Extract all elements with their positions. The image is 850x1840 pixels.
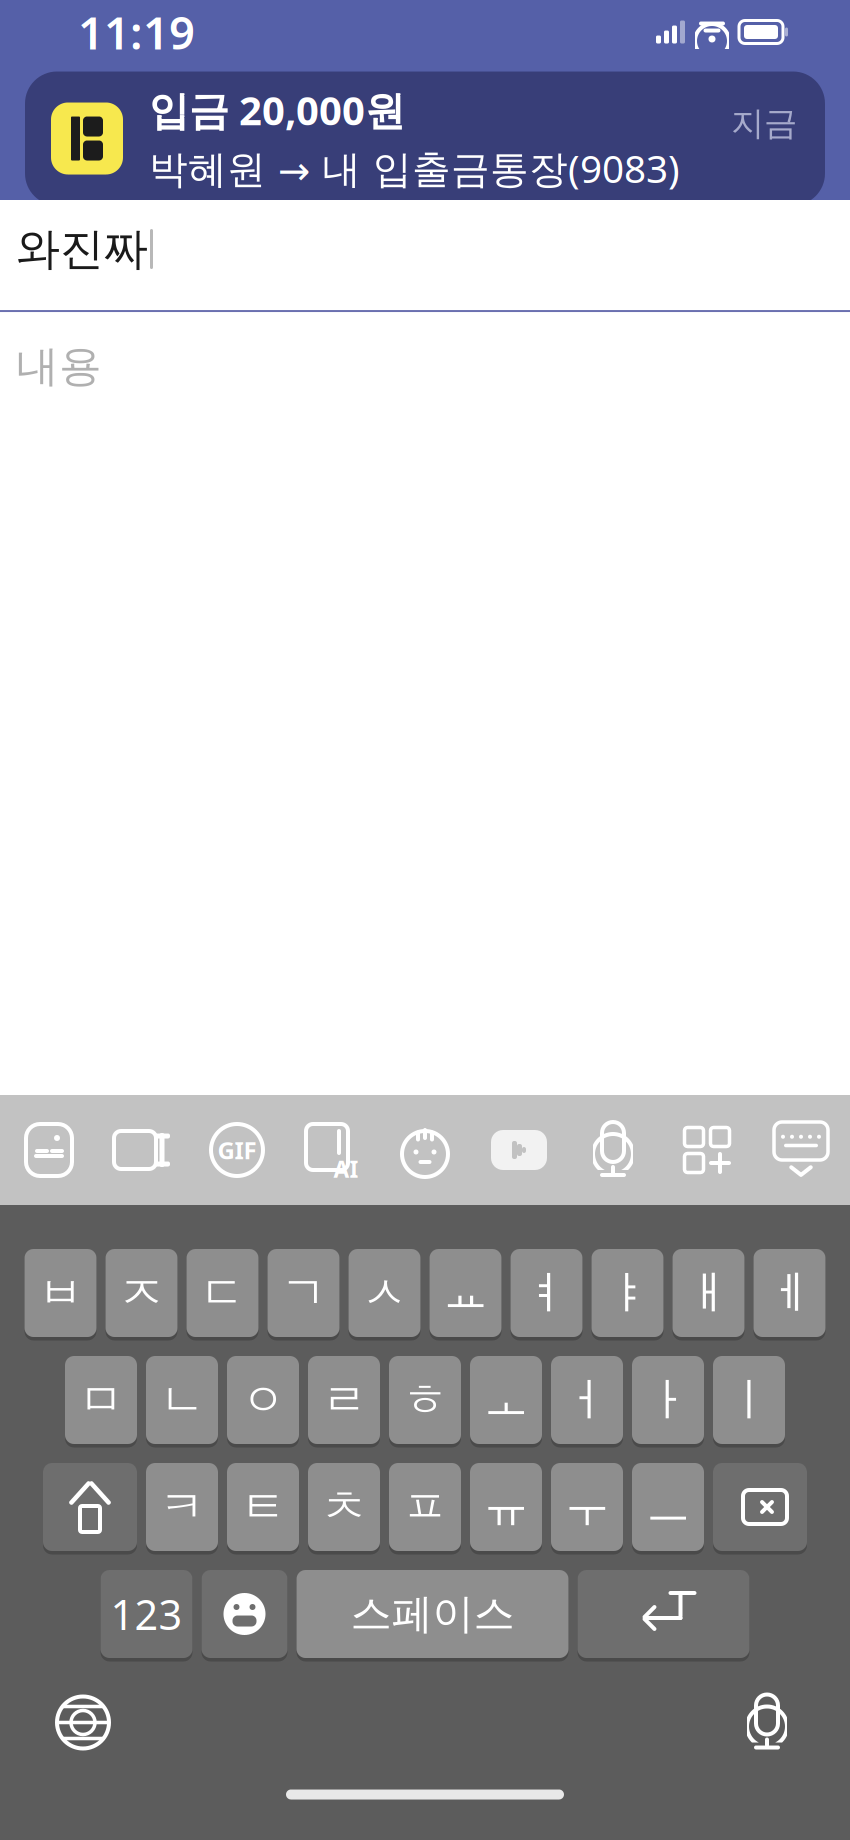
staticText: ㅑ <box>605 1265 650 1321</box>
button[interactable]: 음성 입력 <box>566 1095 660 1205</box>
staticText: ㅓ <box>564 1372 609 1428</box>
staticText: ㅇ <box>240 1372 285 1428</box>
button[interactable]: ㅎ <box>389 1353 461 1446</box>
button[interactable]: ㅁ <box>65 1353 137 1446</box>
staticText: ㅔ <box>767 1265 812 1321</box>
button[interactable]: ㅣ <box>713 1353 785 1446</box>
button[interactable]: ㅅ <box>348 1246 420 1339</box>
staticText: ㅁ <box>78 1372 123 1428</box>
staticText: ㅠ <box>483 1479 528 1535</box>
staticText: ㅗ <box>483 1372 528 1428</box>
staticText: ㅌ <box>240 1479 285 1535</box>
button[interactable]: 이모티콘 <box>201 1567 287 1660</box>
button[interactable]: 줄바꿈 <box>577 1567 749 1660</box>
button[interactable]: 스페이스 <box>296 1567 568 1660</box>
staticText: ㅋ <box>159 1479 204 1535</box>
button[interactable]: ㅋ <box>146 1460 218 1553</box>
staticText: GIF <box>217 1134 256 1166</box>
button[interactable]: ㅡ <box>632 1460 704 1553</box>
button[interactable]: AI 그리기 <box>284 1095 378 1205</box>
button[interactable]: 123 <box>100 1567 192 1660</box>
staticText: 내용 <box>16 340 102 392</box>
staticText: ㅊ <box>321 1479 366 1535</box>
staticText: 스페이스 <box>350 1589 514 1639</box>
button[interactable]: ㅐ <box>672 1246 744 1339</box>
staticText: ㅕ <box>524 1265 569 1321</box>
button[interactable]: 사진 <box>2 1095 96 1205</box>
button[interactable]: 입금 20,000원 알림 <box>25 71 825 205</box>
button[interactable]: Shift <box>43 1460 137 1553</box>
button[interactable]: 동영상 검색 <box>472 1095 566 1205</box>
staticText: 입금 20,000원 <box>149 83 405 136</box>
staticText: ㅎ <box>402 1372 447 1428</box>
staticText: ㅣ <box>726 1372 771 1428</box>
button[interactable]: 받아쓰기 <box>712 1674 822 1770</box>
button[interactable]: ㄹ <box>308 1353 380 1446</box>
button[interactable]: 더보기 <box>660 1095 754 1205</box>
staticText: ㅂ <box>38 1265 83 1321</box>
staticText: ㅈ <box>119 1265 164 1321</box>
staticText: ㅅ <box>362 1265 407 1321</box>
staticText: 지금 <box>731 103 797 144</box>
button[interactable]: ㅗ <box>470 1353 542 1446</box>
staticText: 와진짜 <box>16 222 148 276</box>
button[interactable]: ㅠ <box>470 1460 542 1553</box>
staticText: ㅛ <box>443 1265 488 1321</box>
button[interactable]: ㅊ <box>308 1460 380 1553</box>
staticText: 123 <box>110 1587 182 1641</box>
button[interactable]: ㅏ <box>632 1353 704 1446</box>
button[interactable]: ㅇ <box>227 1353 299 1446</box>
button[interactable]: ㅂ <box>24 1246 96 1339</box>
button[interactable]: ㅈ <box>105 1246 177 1339</box>
staticText: 11:19 <box>78 2 195 62</box>
staticText: AI <box>333 1154 358 1184</box>
staticText: ㄹ <box>321 1372 366 1428</box>
button[interactable]: ㄱ <box>267 1246 339 1339</box>
button[interactable]: ㅓ <box>551 1353 623 1446</box>
button[interactable]: ㅌ <box>227 1460 299 1553</box>
staticText: ㄱ <box>281 1265 326 1321</box>
button[interactable]: 이모티콘 <box>378 1095 472 1205</box>
button[interactable]: ㅍ <box>389 1460 461 1553</box>
button[interactable]: GIF <box>190 1095 284 1205</box>
staticText: ㅜ <box>564 1479 609 1535</box>
staticText: ㅏ <box>645 1372 690 1428</box>
button[interactable]: ㄷ <box>186 1246 258 1339</box>
staticText: ㅍ <box>402 1479 447 1535</box>
staticText: ㅡ <box>645 1479 690 1535</box>
button[interactable]: ㅛ <box>429 1246 501 1339</box>
button[interactable]: ㅔ <box>753 1246 825 1339</box>
button[interactable]: Backspace <box>713 1460 807 1553</box>
staticText: 박혜원 → 내 입출금통장(9083) <box>149 142 680 194</box>
staticText: ㅐ <box>686 1265 731 1321</box>
button[interactable]: 다음 키보드 <box>28 1674 138 1770</box>
button[interactable]: ㄴ <box>146 1353 218 1446</box>
staticText: ㄴ <box>159 1372 204 1428</box>
button[interactable]: ㅜ <box>551 1460 623 1553</box>
button[interactable]: ㅑ <box>591 1246 663 1339</box>
button[interactable]: ㅕ <box>510 1246 582 1339</box>
staticText: ㄷ <box>200 1265 245 1321</box>
button[interactable]: 동영상 <box>96 1095 190 1205</box>
button[interactable]: 키보드 닫기 <box>754 1095 848 1205</box>
